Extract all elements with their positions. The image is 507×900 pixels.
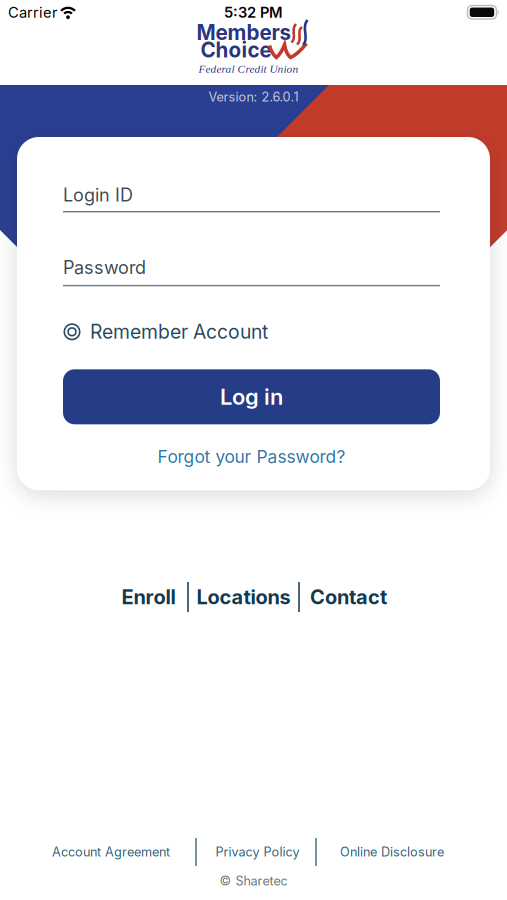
staticText: Login ID — [63, 184, 133, 206]
button[interactable]: Forgot your Password? — [63, 446, 440, 468]
button[interactable]: Locations — [196, 585, 290, 609]
staticText: Remember Account — [90, 320, 268, 343]
staticText: Password — [63, 256, 146, 278]
staticText: Version: 2.6.0.1 — [208, 89, 298, 105]
staticText: © Sharetec — [219, 873, 287, 889]
staticText: Choice — [200, 37, 271, 62]
staticText: 5:32 PM — [224, 4, 283, 21]
button[interactable]: Log in — [63, 369, 440, 424]
button[interactable]: Account Agreement — [52, 844, 170, 860]
button[interactable]: Enroll — [121, 585, 175, 609]
staticText: Online Disclosure — [340, 844, 444, 860]
staticText: Members — [196, 20, 291, 45]
staticText: Contact — [310, 585, 387, 609]
staticText: Log in — [220, 383, 283, 410]
staticText: Carrier — [8, 4, 58, 21]
staticText: Forgot your Password? — [157, 446, 345, 467]
button[interactable]: Contact — [310, 585, 387, 609]
staticText: Federal Credit Union — [198, 63, 298, 75]
staticText: Privacy Policy — [215, 844, 299, 860]
staticText: Account Agreement — [52, 844, 170, 860]
button[interactable]: Online Disclosure — [340, 844, 444, 860]
staticText: Enroll — [121, 585, 175, 609]
staticText: Locations — [196, 585, 290, 609]
button[interactable]: Remember Account — [63, 320, 268, 343]
button[interactable]: Privacy Policy — [215, 844, 299, 860]
